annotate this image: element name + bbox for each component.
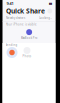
staticText: Looking… xyxy=(39,16,52,20)
staticText: Nearby devices xyxy=(6,16,25,20)
staticText: Photo xyxy=(22,54,31,58)
staticText: ▮▮▮ xyxy=(49,2,52,5)
staticText: Your iPhone is visible xyxy=(6,23,37,26)
staticText: Sending xyxy=(5,43,17,47)
button[interactable]: Profile xyxy=(47,8,52,13)
staticText: 9:41 xyxy=(6,1,13,6)
staticText: MacBook Pro xyxy=(21,36,38,40)
staticText: Quick Share xyxy=(6,7,45,15)
